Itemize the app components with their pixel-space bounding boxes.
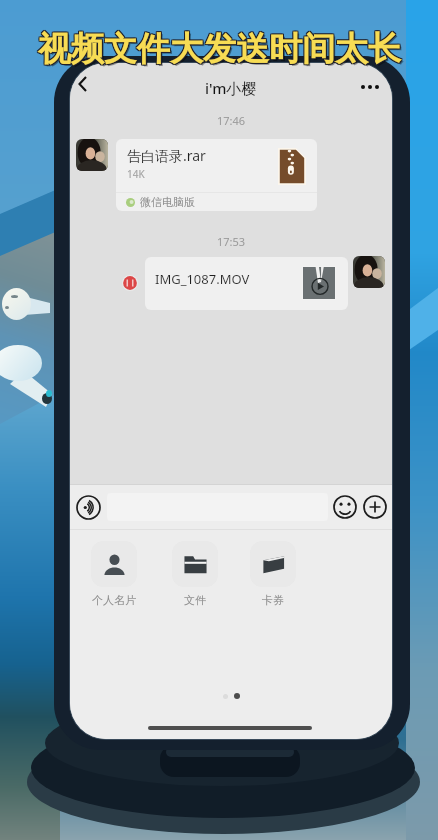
button[interactable]: 告白语录.rar (116, 139, 317, 211)
staticText: 视频文件大发送时间太长 (39, 29, 402, 71)
staticText: 视频文件大发送时间太长 (38, 29, 401, 71)
staticText: 视频文件大发送时间太长 (37, 27, 400, 69)
button[interactable]: IMG_1087.MOV (145, 257, 348, 310)
staticText: 视频文件大发送时间太长 (38, 28, 401, 70)
staticText: 视频文件大发送时间太长 (40, 30, 403, 72)
button[interactable]: Back (70, 68, 104, 102)
staticText: 文件 (184, 593, 206, 607)
staticText: 告白语录.rar (127, 146, 206, 165)
button[interactable] (91, 541, 137, 587)
button[interactable] (172, 541, 218, 587)
staticText: 视频文件大发送时间太长 (39, 27, 402, 69)
staticText: 17:46 (70, 113, 392, 128)
button[interactable]: More options (354, 71, 386, 103)
staticText: 视频文件大发送时间太长 (37, 29, 400, 71)
staticText: IMG_1087.MOV (155, 270, 250, 288)
staticText: 视频文件大发送时间太长 (38, 27, 401, 69)
button[interactable]: More (362, 494, 388, 520)
button[interactable]: Voice message (75, 494, 101, 520)
staticText: i'm小樱 (205, 78, 257, 98)
button[interactable] (250, 541, 296, 587)
staticText: 微信电脑版 (140, 195, 195, 209)
staticText: 视频文件大发送时间太长 (37, 28, 400, 70)
staticText: 卡券 (262, 593, 284, 607)
staticText: 17:53 (70, 234, 392, 249)
staticText: 个人名片 (92, 593, 136, 607)
button[interactable]: Emoji (332, 494, 358, 520)
staticText: 14K (127, 167, 145, 181)
staticText: 视频文件大发送时间太长 (39, 28, 402, 70)
